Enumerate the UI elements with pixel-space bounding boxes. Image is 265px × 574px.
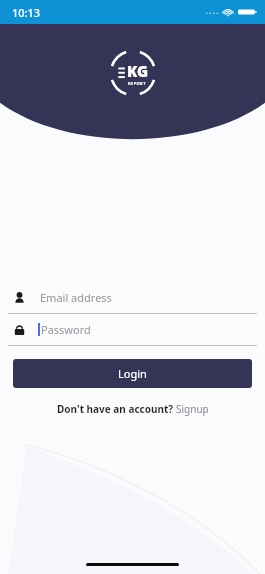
staticText: Password	[41, 322, 91, 337]
staticText: Email address	[40, 290, 112, 305]
staticText: 10:13	[12, 5, 41, 20]
button[interactable]: Email address field	[0, 282, 265, 313]
button[interactable]: Password field	[0, 314, 265, 345]
staticText: Signup	[176, 402, 209, 416]
button[interactable]: Don't have an account?	[0, 402, 265, 416]
staticText: KG	[127, 61, 149, 81]
staticText: Don't have an account?	[57, 402, 176, 416]
button[interactable]: Login	[13, 359, 252, 388]
staticText: Login	[118, 366, 147, 381]
staticText: REPORT	[128, 81, 146, 86]
